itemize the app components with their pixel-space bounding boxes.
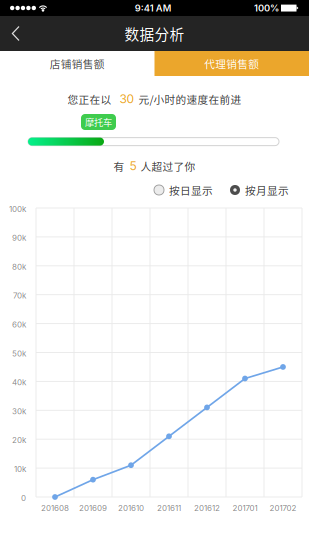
staticText: 人超过了你	[140, 158, 195, 174]
button[interactable]: 按月显示	[230, 180, 289, 200]
staticText: 代理销售额	[204, 56, 259, 71]
staticText: 10k	[14, 464, 26, 474]
staticText: 0	[21, 493, 26, 503]
staticText: 70k	[13, 291, 26, 301]
staticText: 90k	[12, 233, 26, 243]
staticText: 40k	[12, 378, 26, 387]
button[interactable]: Back	[0, 16, 32, 51]
staticText: 元/小时的速度在前进	[138, 91, 241, 107]
staticText: 201608	[41, 503, 69, 513]
button[interactable]: 店铺销售额	[0, 51, 154, 76]
button[interactable]: 代理销售额	[154, 51, 309, 76]
staticText: 按日显示	[169, 182, 213, 198]
staticText: 30	[119, 92, 134, 106]
staticText: 30k	[12, 406, 26, 416]
staticText: 有	[113, 158, 124, 174]
staticText: 60k	[12, 320, 26, 329]
staticText: 100k	[9, 204, 26, 214]
staticText: 50k	[12, 349, 26, 358]
staticText: 5	[129, 159, 136, 173]
staticText: 201610	[118, 503, 144, 513]
staticText: 80k	[12, 262, 26, 272]
staticText: 店铺销售额	[50, 56, 105, 71]
staticText: 201701	[232, 503, 257, 513]
staticText: 100%	[254, 2, 279, 14]
staticText: 按月显示	[245, 182, 289, 198]
staticText: 20k	[12, 435, 26, 445]
staticText: 数据分析	[124, 23, 184, 44]
staticText: 摩托车	[85, 115, 112, 129]
staticText: 您正在以	[67, 91, 111, 107]
staticText: 201611	[157, 503, 181, 513]
button[interactable]: 按日显示	[154, 180, 213, 200]
staticText: 201609	[79, 503, 107, 513]
staticText: 201702	[269, 503, 296, 513]
staticText: 201612	[194, 503, 220, 513]
staticText: 9:41 AM	[135, 2, 172, 14]
